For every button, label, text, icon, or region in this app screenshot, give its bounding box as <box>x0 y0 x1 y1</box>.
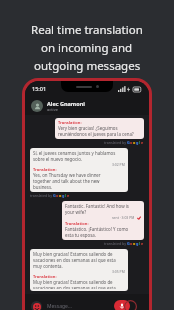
button[interactable]: Message... <box>47 303 110 310</box>
staticText: Muy bien gracias! Estamos saliendo de <box>33 279 113 285</box>
staticText: Sí, el jueves cenamos juntos y hablamos <box>33 150 116 156</box>
button[interactable]: Translation: <box>55 118 144 139</box>
staticText: G <box>53 193 56 198</box>
staticText: vacaciones en dos semanas así que esta <box>33 285 116 289</box>
button[interactable]: Send <box>124 300 137 310</box>
staticText: G <box>127 241 130 246</box>
staticText: o <box>133 140 136 145</box>
staticText: 3:02 PM <box>112 162 125 167</box>
staticText: reuniéndonos el jueves para la cena? <box>58 131 134 137</box>
staticText: business. <box>33 184 53 190</box>
staticText: Real time translation <box>31 22 143 38</box>
staticText: 15:01 <box>32 85 47 92</box>
staticText: Translation: <box>58 120 82 125</box>
button[interactable]: Fantastic. Fantastic! And how is <box>62 201 144 240</box>
staticText: active <box>47 107 58 112</box>
staticText: o <box>130 140 133 145</box>
staticText: your wife? <box>65 209 87 215</box>
staticText: esta tu esposa. <box>65 232 96 238</box>
button[interactable]: Alec Gnamoni <box>25 96 149 115</box>
staticText: Message... <box>47 303 72 310</box>
button[interactable]: Emoji <box>31 301 42 310</box>
staticText: Translation: <box>33 274 57 279</box>
staticText: outgoing messages <box>34 58 141 74</box>
staticText: sobre el nuevo negocio. <box>33 156 83 162</box>
staticText: on incoming and <box>41 40 133 56</box>
staticText: Translation: <box>65 221 89 226</box>
staticText: G <box>127 140 130 145</box>
staticText: g <box>62 193 65 198</box>
staticText: sent · 3:03 PM <box>112 215 135 220</box>
staticText: Alec Gnamoni <box>47 100 85 107</box>
staticText: translated by <box>104 140 127 145</box>
staticText: Muy bien gracias! Estamos saliendo de <box>33 251 113 257</box>
staticText: vacaciones en dos semanas así que esta <box>33 257 116 263</box>
staticText: o <box>59 193 62 198</box>
staticText: l <box>139 140 141 145</box>
staticText: Translation: <box>33 167 57 172</box>
button[interactable]: Muy bien gracias! Estamos saliendo de <box>30 249 128 291</box>
staticText: translated by <box>104 241 127 246</box>
staticText: l <box>139 241 141 246</box>
staticText: together and talk about the new <box>33 178 100 184</box>
staticText: translated by <box>30 193 53 198</box>
button[interactable]: Record voice message <box>114 300 130 310</box>
staticText: g <box>136 241 139 246</box>
button[interactable]: Sí, el jueves cenamos juntos y hablamos <box>30 148 128 192</box>
staticText: Fantástico. ¡Fantástico! Y como <box>65 226 129 232</box>
staticText: Fantastic. Fantastic! And how is <box>65 203 129 209</box>
staticText: Yes, on Thursday we have dinner <box>33 172 101 178</box>
staticText: e <box>141 140 144 145</box>
staticText: e <box>67 193 70 198</box>
staticText: muy contenta. <box>33 263 63 269</box>
staticText: o <box>56 193 59 198</box>
staticText: g <box>136 140 139 145</box>
staticText: o <box>133 241 136 246</box>
staticText: e <box>141 241 144 246</box>
staticText: 3:05 PM <box>112 269 125 274</box>
staticText: Very bien gracias! ¿Seguimos <box>58 125 118 131</box>
staticText: o <box>130 241 133 246</box>
staticText: l <box>65 193 67 198</box>
